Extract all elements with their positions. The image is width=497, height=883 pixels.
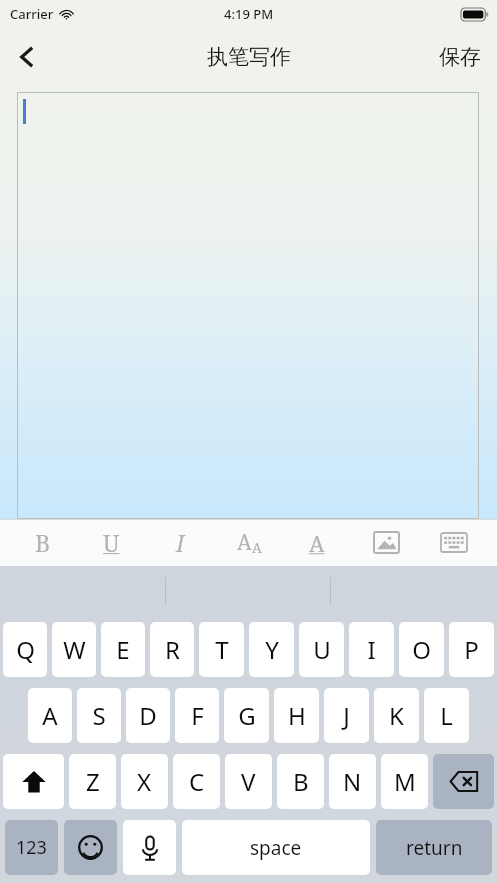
- staticText: I: [367, 633, 376, 666]
- button[interactable]: Dictate: [123, 820, 176, 875]
- staticText: B: [293, 765, 309, 798]
- button[interactable]: Italic: [154, 519, 206, 566]
- button[interactable]: [17, 92, 479, 519]
- staticText: A: [309, 528, 325, 558]
- button[interactable]: Text color: [291, 519, 343, 566]
- button[interactable]: Bold: [17, 519, 69, 566]
- staticText: T: [215, 633, 229, 666]
- button[interactable]: N: [329, 754, 376, 809]
- staticText: L: [440, 699, 453, 732]
- staticText: G: [238, 699, 256, 732]
- button[interactable]: V: [225, 754, 272, 809]
- button[interactable]: A: [28, 688, 72, 743]
- button[interactable]: Font size: [223, 519, 275, 566]
- staticText: 保存: [439, 44, 481, 70]
- button[interactable]: I: [349, 622, 394, 677]
- staticText: N: [343, 765, 362, 798]
- staticText: return: [406, 835, 463, 861]
- button[interactable]: Hide keyboard: [428, 519, 480, 566]
- button[interactable]: O: [399, 622, 444, 677]
- staticText: S: [92, 699, 106, 732]
- staticText: M: [394, 765, 416, 798]
- button[interactable]: R: [150, 622, 194, 677]
- button[interactable]: X: [121, 754, 168, 809]
- staticText: Q: [16, 633, 35, 666]
- button[interactable]: C: [173, 754, 220, 809]
- button[interactable]: space: [182, 820, 370, 875]
- button[interactable]: return: [376, 820, 492, 875]
- button[interactable]: B: [277, 754, 324, 809]
- staticText: K: [389, 699, 404, 732]
- button[interactable]: M: [381, 754, 428, 809]
- staticText: U: [313, 633, 331, 666]
- staticText: space: [250, 835, 302, 861]
- staticText: A: [237, 528, 252, 557]
- button[interactable]: F: [175, 688, 219, 743]
- button[interactable]: P: [449, 622, 494, 677]
- button[interactable]: Backspace: [433, 754, 494, 809]
- button[interactable]: Emoji: [64, 820, 117, 875]
- staticText: U: [103, 527, 120, 558]
- staticText: I: [176, 527, 185, 558]
- button[interactable]: D: [126, 688, 170, 743]
- staticText: X: [137, 765, 152, 798]
- staticText: E: [116, 633, 130, 666]
- button[interactable]: G: [224, 688, 269, 743]
- button[interactable]: Back: [0, 30, 54, 84]
- button[interactable]: L: [424, 688, 469, 743]
- staticText: A: [42, 699, 58, 732]
- staticText: H: [288, 699, 306, 732]
- staticText: W: [63, 633, 86, 666]
- staticText: D: [139, 699, 157, 732]
- staticText: Carrier: [10, 5, 54, 23]
- staticText: A: [252, 538, 262, 557]
- button[interactable]: W: [52, 622, 96, 677]
- button[interactable]: S: [77, 688, 121, 743]
- staticText: Y: [265, 633, 279, 666]
- button[interactable]: Y: [249, 622, 294, 677]
- staticText: R: [165, 633, 180, 666]
- button[interactable]: K: [374, 688, 419, 743]
- button[interactable]: 123: [5, 820, 58, 875]
- staticText: J: [343, 699, 350, 732]
- button[interactable]: Q: [3, 622, 47, 677]
- staticText: V: [241, 765, 256, 798]
- button[interactable]: T: [199, 622, 244, 677]
- staticText: P: [464, 633, 479, 666]
- staticText: C: [189, 765, 205, 798]
- button[interactable]: E: [101, 622, 145, 677]
- button[interactable]: Underline: [85, 519, 137, 566]
- button[interactable]: Insert image: [360, 519, 412, 566]
- staticText: Z: [86, 765, 100, 798]
- button[interactable]: H: [274, 688, 319, 743]
- button[interactable]: 保存: [423, 30, 497, 84]
- staticText: O: [412, 633, 431, 666]
- staticText: 4:19 PM: [224, 5, 274, 23]
- staticText: F: [191, 699, 204, 732]
- staticText: B: [35, 527, 51, 558]
- button[interactable]: U: [299, 622, 344, 677]
- button[interactable]: J: [324, 688, 369, 743]
- staticText: 123: [16, 835, 47, 860]
- staticText: 执笔写作: [207, 44, 291, 70]
- button[interactable]: Shift: [3, 754, 64, 809]
- button[interactable]: Z: [69, 754, 116, 809]
